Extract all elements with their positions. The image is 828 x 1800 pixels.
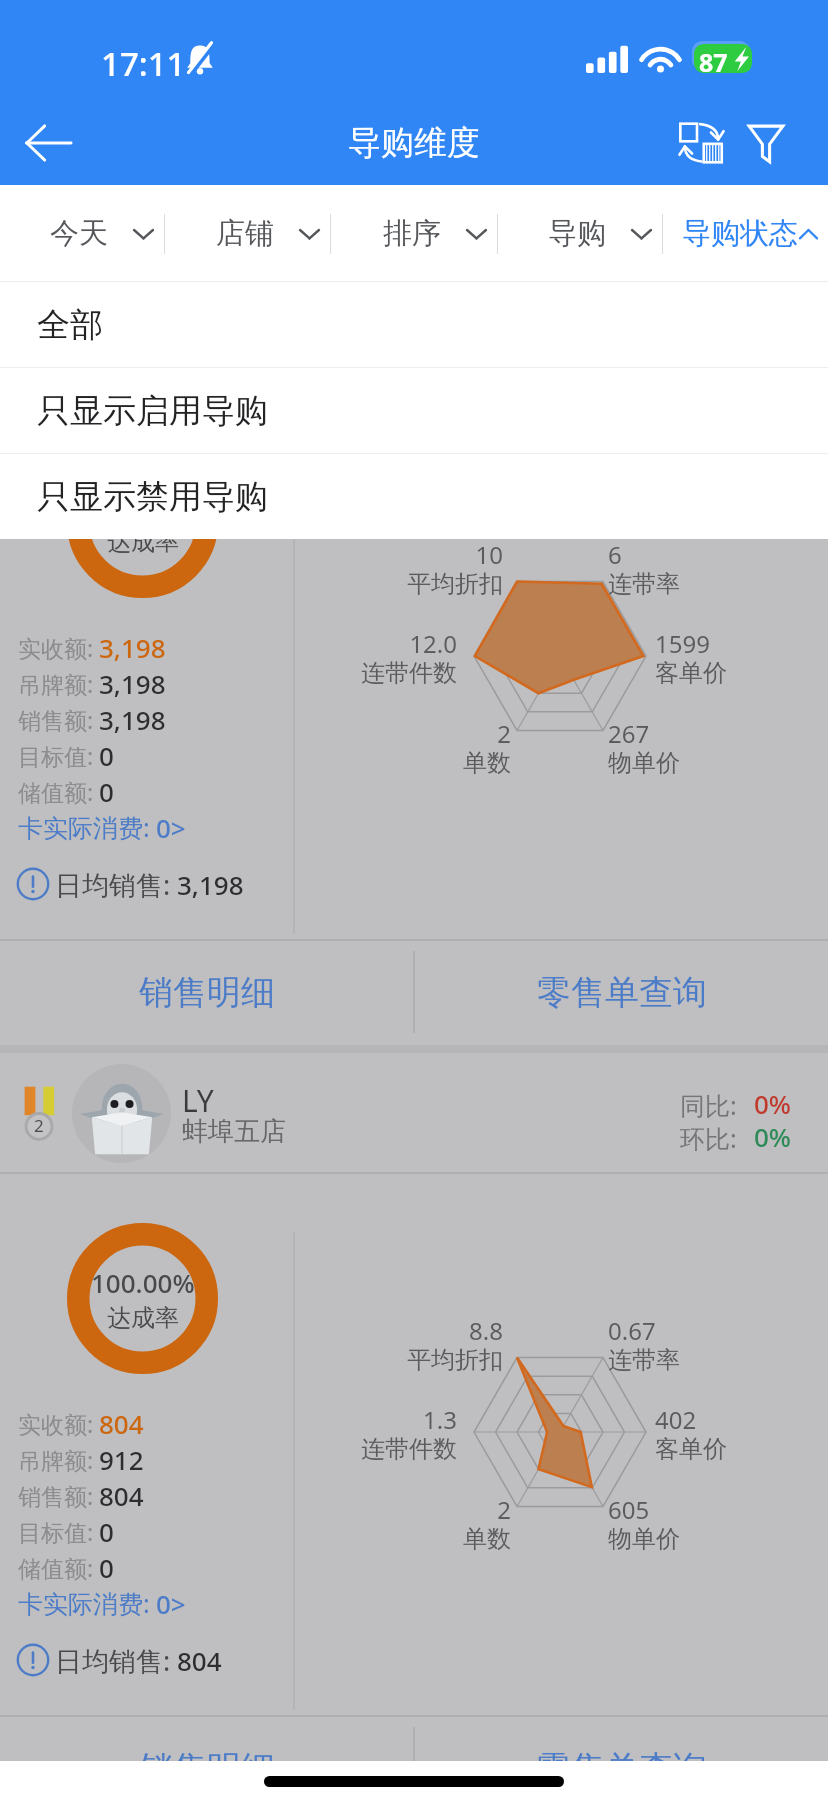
button[interactable]: 销售明细	[0, 1717, 413, 1800]
staticText: 402 客单价	[655, 1403, 828, 1465]
staticText: 8.8 平均折扣	[323, 1314, 503, 1376]
staticText: 全部	[37, 304, 103, 346]
button[interactable]: 零售单查询	[415, 941, 828, 1043]
staticText: 3,198	[99, 630, 166, 665]
button[interactable]: 排序	[330, 185, 497, 282]
staticText: 2	[34, 1114, 44, 1137]
staticText: 3,198	[99, 702, 166, 737]
staticText: 0	[99, 738, 114, 773]
staticText: 3,198	[99, 666, 166, 701]
button[interactable]: 销售明细	[0, 941, 413, 1043]
staticText: 100.00%	[91, 1265, 195, 1300]
staticText: 销售额:	[18, 704, 94, 735]
staticText: 吊牌额:	[18, 1444, 94, 1475]
staticText: 2 单数	[331, 717, 511, 779]
button[interactable]: Filter	[723, 100, 808, 185]
staticText: 0.67 连带率	[608, 1314, 788, 1376]
staticText: 导购维度	[348, 122, 480, 164]
staticText: 日均销售:	[55, 1642, 171, 1679]
staticText: 804	[99, 1478, 144, 1513]
staticText: 吊牌额:	[18, 668, 94, 699]
staticText: 12.0 连带件数	[277, 627, 457, 689]
staticText: 储值额:	[18, 776, 94, 807]
button[interactable]: 卡实际消费:	[18, 809, 186, 845]
staticText: 达成率	[107, 1303, 179, 1333]
staticText: 10 平均折扣	[323, 538, 503, 600]
button[interactable]: 只显示启用导购	[0, 368, 828, 453]
staticText: 17:11	[101, 41, 186, 86]
staticText: 1.3 连带件数	[277, 1403, 457, 1465]
staticText: 0%	[754, 1119, 792, 1154]
staticText: 0>	[156, 810, 186, 845]
staticText: 导购状态	[682, 215, 798, 252]
staticText: 只显示启用导购	[37, 390, 268, 432]
staticText: 实收额:	[18, 632, 94, 663]
staticText: 87	[699, 45, 728, 74]
staticText: 销售明细	[139, 971, 275, 1014]
staticText: 只显示禁用导购	[37, 476, 268, 518]
staticText: 100.00%	[91, 489, 195, 524]
staticText: 实收额:	[18, 1408, 94, 1439]
button[interactable]: 店铺	[164, 185, 330, 282]
staticText: 同比:	[680, 1088, 737, 1122]
staticText: 605 物单价	[608, 1493, 788, 1555]
staticText: 0>	[156, 1586, 186, 1621]
staticText: 912	[99, 1442, 144, 1477]
staticText: 0%	[754, 1086, 792, 1121]
button[interactable]: 卡实际消费:	[18, 1585, 186, 1621]
staticText: 环比:	[680, 1121, 737, 1155]
staticText: 零售单查询	[537, 971, 707, 1014]
staticText: 3,198	[177, 867, 244, 902]
button[interactable]: 2	[0, 1053, 828, 1174]
button[interactable]: 导购状态	[662, 185, 828, 282]
staticText: 卡实际消费:	[18, 1586, 150, 1620]
staticText: 267 物单价	[608, 717, 788, 779]
staticText: 储值额:	[18, 1552, 94, 1583]
staticText: 1599 客单价	[655, 627, 828, 689]
button[interactable]: Back	[0, 100, 96, 185]
staticText: 蚌埠五店	[182, 1115, 286, 1148]
staticText: 零售单查询	[537, 1747, 707, 1790]
staticText: 804	[99, 1406, 144, 1441]
staticText: 6 连带率	[608, 538, 788, 600]
button[interactable]: 零售单查询	[415, 1717, 828, 1800]
staticText: 2 单数	[331, 1493, 511, 1555]
staticText: LY	[182, 1080, 214, 1121]
staticText: 日均销售:	[55, 866, 171, 903]
staticText: 0	[99, 774, 114, 809]
staticText: 0	[99, 1550, 114, 1585]
staticText: 销售明细	[139, 1747, 275, 1790]
button[interactable]: 今天	[0, 185, 164, 282]
staticText: 店铺	[216, 215, 274, 252]
button[interactable]: 导购	[497, 185, 662, 282]
staticText: 0	[99, 1514, 114, 1549]
staticText: 目标值:	[18, 1516, 94, 1547]
staticText: 排序	[383, 215, 441, 252]
button[interactable]: 全部	[0, 282, 828, 367]
staticText: 达成率	[107, 527, 179, 557]
staticText: 804	[177, 1643, 222, 1678]
button[interactable]: Switch layout	[659, 100, 744, 185]
staticText: 今天	[50, 215, 108, 252]
staticText: 导购	[548, 215, 606, 252]
button[interactable]: 只显示禁用导购	[0, 454, 828, 539]
staticText: 目标值:	[18, 740, 94, 771]
staticText: 卡实际消费:	[18, 810, 150, 844]
staticText: 销售额:	[18, 1480, 94, 1511]
